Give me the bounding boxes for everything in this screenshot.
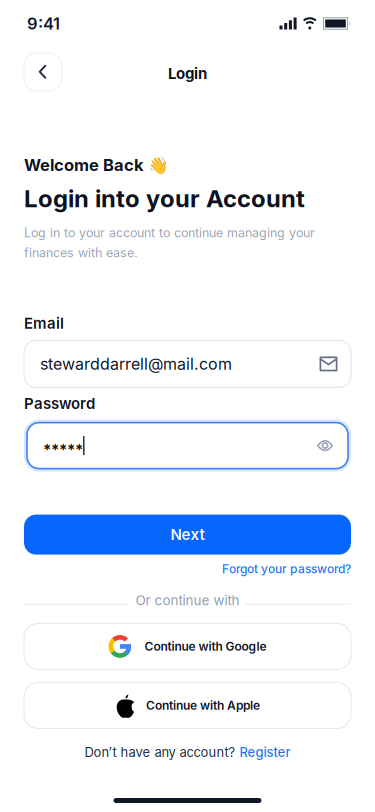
staticText: Register: [239, 744, 290, 760]
button[interactable]: Back: [24, 53, 62, 91]
staticText: Login into your Account: [24, 184, 305, 213]
staticText: Forgot your password?: [222, 562, 351, 576]
button[interactable]: Continue with Apple: [24, 682, 351, 728]
button[interactable]: Continue with Google: [24, 623, 351, 669]
button[interactable]: Forgot your password?: [222, 562, 351, 576]
staticText: stewarddarrell@mail.com: [40, 354, 232, 374]
staticText: Email: [24, 314, 64, 332]
staticText: Welcome Back 👋: [24, 155, 169, 175]
staticText: Next: [170, 525, 204, 544]
staticText: *****: [43, 440, 83, 459]
button[interactable]: Home: [113, 798, 261, 803]
staticText: Continue with Google: [144, 639, 266, 654]
staticText: Don’t have any account?: [84, 744, 235, 760]
staticText: Log in to your account to continue manag…: [24, 225, 315, 260]
button[interactable]: Next: [24, 515, 351, 555]
staticText: Password: [24, 394, 95, 412]
staticText: Login: [168, 64, 207, 82]
staticText: Or continue with: [135, 592, 239, 608]
staticText: 9:41: [27, 13, 60, 33]
button[interactable]: Don’t have any account?: [84, 744, 290, 760]
staticText: Continue with Apple: [146, 698, 260, 713]
